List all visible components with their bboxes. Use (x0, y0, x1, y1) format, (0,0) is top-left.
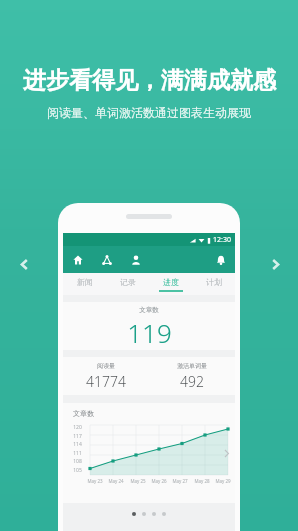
button[interactable] (142, 512, 146, 516)
staticText: 计划 (206, 277, 222, 287)
staticText: 117 (73, 433, 82, 440)
staticText: 108 (73, 458, 82, 465)
button[interactable]: 激活单词量 (149, 357, 235, 395)
staticText: May 28 (194, 478, 210, 484)
button[interactable]: 计划 (192, 273, 235, 295)
button[interactable]: Previous (12, 252, 36, 276)
staticText: 41774 (86, 372, 126, 391)
button[interactable]: Home (69, 251, 86, 268)
button[interactable]: 文章数 (63, 302, 235, 350)
button[interactable]: 新闻 (63, 273, 106, 295)
staticText: 文章数 (139, 306, 159, 314)
staticText: 111 (73, 450, 82, 457)
staticText: 阅读量 (97, 362, 115, 370)
staticText: 激活单词量 (177, 362, 207, 370)
button[interactable]: Next chart (220, 447, 232, 459)
staticText: May 26 (151, 478, 167, 484)
staticText: 记录 (120, 277, 136, 287)
staticText: May 29 (215, 478, 231, 484)
button[interactable]: Share (98, 251, 115, 268)
staticText: May 27 (172, 478, 188, 484)
button[interactable]: 进度 (149, 273, 192, 295)
staticText: May 23 (87, 478, 103, 484)
button[interactable]: 阅读量 (63, 357, 149, 395)
staticText: May 25 (130, 478, 146, 484)
staticText: 114 (73, 441, 82, 448)
button[interactable]: 文章数 (63, 403, 235, 503)
staticText: 阅读量、单词激活数通过图表生动展现 (47, 105, 251, 120)
staticText: 492 (180, 372, 204, 391)
staticText: 进步看得见，满满成就感 (23, 66, 276, 95)
staticText: 119 (127, 315, 172, 350)
button[interactable]: 记录 (106, 273, 149, 295)
button[interactable] (152, 512, 156, 516)
button[interactable] (132, 512, 136, 516)
staticText: 105 (73, 467, 82, 474)
button[interactable] (162, 512, 166, 516)
button[interactable]: Profile (127, 251, 144, 268)
button[interactable]: Notifications (212, 251, 229, 268)
staticText: 12:30 (213, 235, 231, 245)
staticText: 新闻 (77, 277, 93, 287)
button[interactable]: Next (263, 252, 287, 276)
staticText: 120 (73, 424, 82, 431)
staticText: 文章数 (73, 409, 94, 418)
staticText: 进度 (163, 277, 179, 287)
staticText: May 24 (108, 478, 124, 484)
